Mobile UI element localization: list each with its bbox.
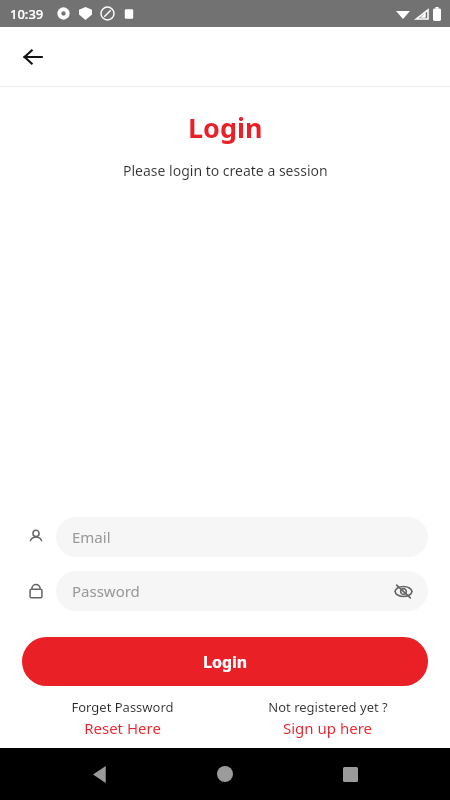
button[interactable]: Back (77, 750, 125, 798)
button[interactable]: Email (56, 517, 428, 557)
button[interactable]: Home (201, 750, 249, 798)
button[interactable]: Password (56, 571, 428, 611)
button[interactable]: Login (22, 637, 428, 686)
button[interactable]: Not registered yet ? (225, 698, 430, 738)
staticText: Email (72, 527, 111, 547)
staticText: Please login to create a session (123, 161, 328, 180)
button[interactable]: Back (12, 36, 54, 78)
button[interactable]: Forget Password (20, 698, 225, 738)
staticText: Login (188, 109, 263, 146)
staticText: Reset Here (84, 718, 161, 738)
staticText: 10:39 (10, 5, 44, 23)
staticText: Not registered yet ? (268, 698, 388, 716)
staticText: Login (203, 651, 248, 673)
staticText: Forget Password (71, 698, 174, 716)
staticText: Sign up here (283, 718, 372, 738)
button[interactable]: Recent apps (326, 750, 374, 798)
button[interactable]: Show password (390, 578, 416, 604)
staticText: Password (72, 581, 140, 601)
